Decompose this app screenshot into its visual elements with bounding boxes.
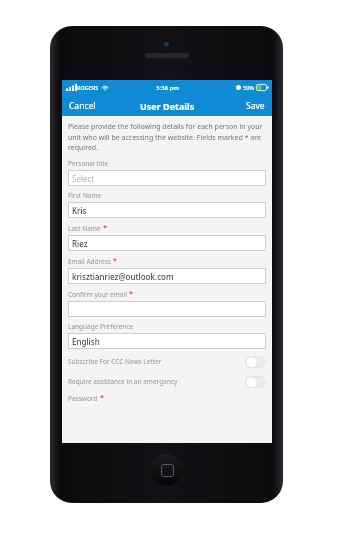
staticText: Require assistance in an emergency xyxy=(68,377,245,386)
staticText: First Name xyxy=(68,191,102,200)
button[interactable]: krisztianriez@outlook.com xyxy=(68,268,266,284)
button[interactable]: Home xyxy=(151,454,183,486)
button[interactable]: Save xyxy=(239,95,272,116)
staticText: English xyxy=(72,336,100,347)
button[interactable]: Riez xyxy=(68,235,266,251)
button[interactable]: Kris xyxy=(68,202,266,218)
staticText: * xyxy=(113,256,117,266)
staticText: ROGERS xyxy=(77,84,99,91)
staticText: Password xyxy=(68,394,98,403)
button[interactable]: Cancel xyxy=(62,95,103,116)
staticText: * xyxy=(129,289,133,299)
staticText: Kris xyxy=(72,205,87,216)
staticText: Cancel xyxy=(69,100,96,112)
staticText: Select xyxy=(72,173,95,184)
staticText: * xyxy=(103,223,107,233)
staticText: Language Preference xyxy=(68,322,134,331)
staticText: Riez xyxy=(72,238,88,249)
staticText: Confirm your email xyxy=(68,290,127,299)
staticText: Email Address xyxy=(68,257,111,266)
staticText: * xyxy=(100,393,104,403)
staticText: Last Name xyxy=(68,224,101,233)
staticText: krisztianriez@outlook.com xyxy=(72,271,174,282)
staticText: Please provide the following details for… xyxy=(68,122,266,152)
button[interactable] xyxy=(68,301,266,317)
staticText: 3:38 pm xyxy=(156,84,179,92)
staticText: Subscribe For CCC News Letter xyxy=(68,357,245,366)
button[interactable]: Require assistance in an emergency xyxy=(68,373,266,390)
staticText: Personal title xyxy=(68,159,109,168)
button[interactable]: Subscribe For CCC News Letter xyxy=(68,353,266,370)
staticText: User Details xyxy=(140,100,195,112)
staticText: 50% xyxy=(243,84,254,91)
button[interactable]: Select xyxy=(68,170,266,186)
button[interactable]: English xyxy=(68,333,266,349)
staticText: Save xyxy=(246,100,265,112)
